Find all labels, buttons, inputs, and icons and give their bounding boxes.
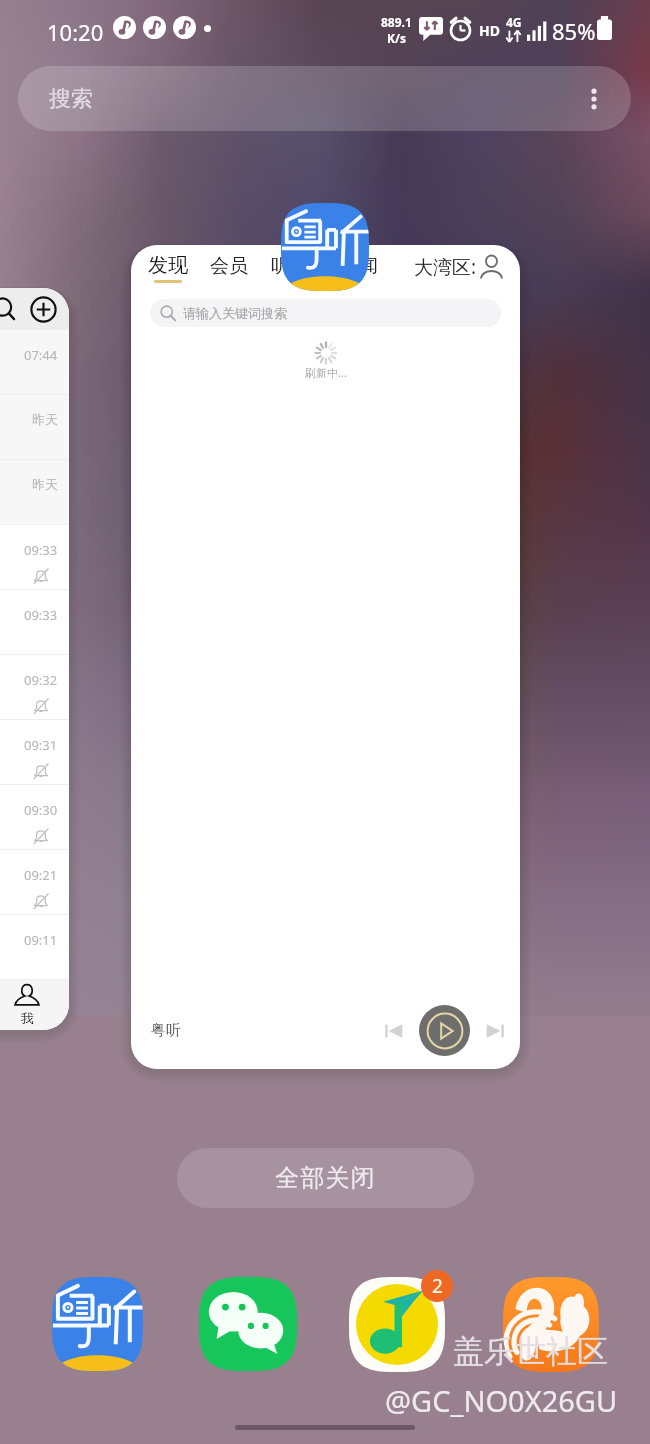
button[interactable]: 搜索 [18, 66, 631, 131]
staticText: K/s [387, 30, 406, 46]
staticText: 我 [21, 1010, 34, 1026]
button[interactable]: WeChat [199, 1277, 297, 1371]
staticText: 4G [506, 14, 522, 30]
staticText: HD [479, 21, 500, 40]
button[interactable]: 09:11 [0, 915, 69, 980]
button[interactable]: 听 [271, 254, 290, 278]
staticText: 粤听 [151, 1021, 181, 1040]
staticText: 2 [432, 1273, 443, 1299]
staticText: 请输入关键词搜索 [183, 305, 287, 321]
staticText: 盖乐世社区 [453, 1332, 608, 1371]
staticText: 09:11 [24, 931, 58, 949]
button[interactable]: 昨天 [0, 395, 69, 460]
staticText: 889.1 [381, 14, 412, 30]
button[interactable]: 我 [0, 980, 69, 1030]
staticText: 发现 [148, 253, 188, 278]
button[interactable]: 09:21 [0, 850, 69, 915]
button[interactable]: 09:33 [0, 590, 69, 655]
button[interactable]: More options [577, 82, 611, 116]
button[interactable]: 发现 [131, 245, 520, 1069]
staticText: 昨天 [32, 476, 58, 492]
button[interactable]: 09:30 [0, 785, 69, 850]
staticText: 搜索 [49, 85, 93, 113]
staticText: 昨天 [32, 411, 58, 427]
button[interactable]: 粤听 [131, 991, 520, 1069]
staticText: 全部关闭 [275, 1163, 376, 1193]
staticText: 09:31 [24, 736, 58, 754]
staticText: 09:21 [24, 866, 58, 884]
button[interactable]: 粤听 app [281, 203, 369, 291]
button[interactable]: 会员 [210, 254, 248, 278]
button[interactable]: QQ Music [349, 1277, 445, 1372]
button[interactable]: 09:33 [0, 525, 69, 590]
button[interactable]: Next [479, 1015, 511, 1047]
staticText: @GC_NO0X26GU [385, 1381, 618, 1420]
button[interactable]: 09:32 [0, 655, 69, 720]
staticText: 09:33 [24, 606, 58, 624]
button[interactable]: 09:31 [0, 720, 69, 785]
button[interactable]: 昨天 [0, 460, 69, 525]
button[interactable]: 请输入关键词搜索 [150, 299, 501, 327]
button[interactable]: 全部关闭 [177, 1148, 474, 1208]
button[interactable]: 大湾区: [414, 254, 477, 280]
staticText: 09:32 [24, 671, 58, 689]
button[interactable]: 07:44 [0, 288, 69, 1030]
button[interactable]: 07:44 [0, 330, 69, 395]
button[interactable]: UC Browser [503, 1277, 599, 1372]
button[interactable]: Account [476, 251, 506, 281]
button[interactable]: 发现 [148, 253, 188, 283]
button[interactable]: Play [419, 1005, 470, 1056]
staticText: 09:33 [24, 541, 58, 559]
staticText: 刷新中... [305, 365, 347, 380]
staticText: 10:20 [47, 17, 104, 47]
button[interactable]: Previous [378, 1015, 410, 1047]
button[interactable]: 闻 [359, 254, 378, 278]
staticText: 85% [552, 16, 596, 46]
staticText: 07:44 [24, 346, 58, 364]
button[interactable]: 粤听 app [52, 1277, 143, 1371]
staticText: 09:30 [24, 801, 58, 819]
